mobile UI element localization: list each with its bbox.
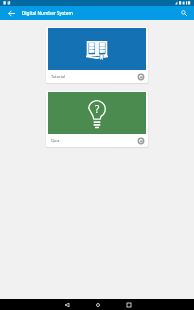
staticText: Tutorial	[51, 74, 65, 79]
button[interactable]: Back	[5, 7, 17, 19]
button[interactable]: ?	[46, 91, 148, 147]
button[interactable]: Home	[92, 299, 103, 310]
staticText: Digital Number System	[22, 10, 73, 16]
button[interactable]: Back	[61, 299, 72, 310]
button[interactable]: Recents	[123, 299, 134, 310]
button[interactable]: Tutorial	[46, 27, 148, 83]
button[interactable]: Search	[178, 7, 190, 19]
staticText: ?	[95, 102, 100, 116]
staticText: Quiz	[51, 138, 60, 143]
